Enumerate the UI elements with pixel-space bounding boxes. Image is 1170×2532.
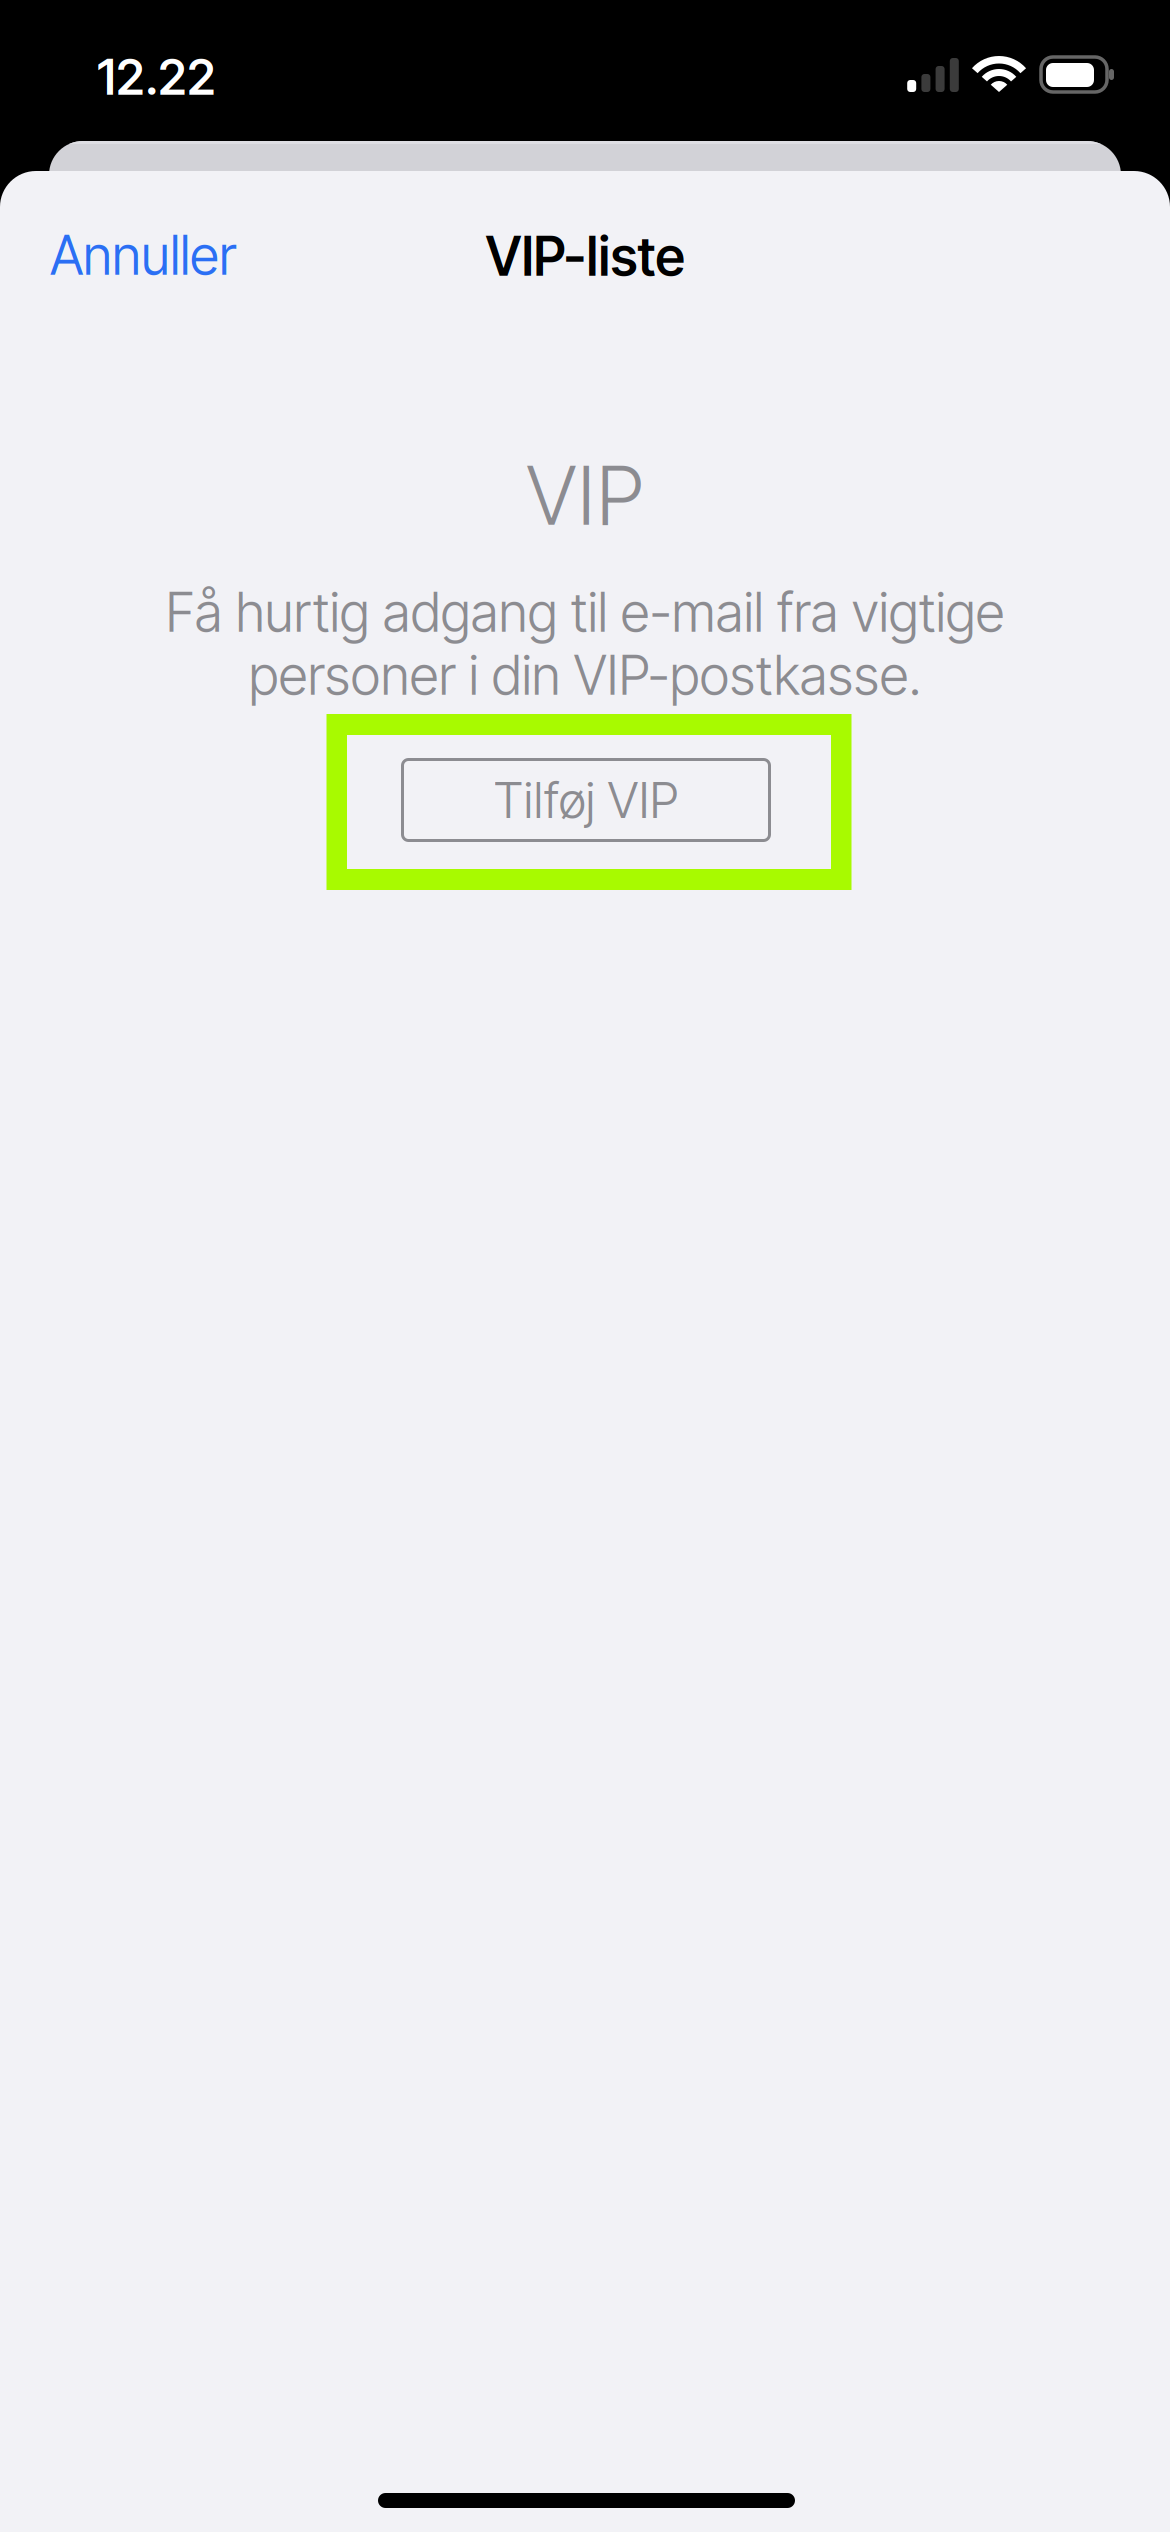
staticText: VIP-liste [485,224,684,288]
staticText: 12.22 [97,47,216,107]
staticText: Få hurtig adgang til e-mail fra vigtige [165,580,1004,644]
button[interactable]: Tilføj VIP [326,714,851,890]
staticText: Annuller [50,223,236,287]
button[interactable]: Annuller [36,201,250,309]
staticText: Tilføj VIP [493,770,678,830]
staticText: personer i din VIP-postkasse. [248,643,921,707]
staticText: VIP [526,446,644,544]
